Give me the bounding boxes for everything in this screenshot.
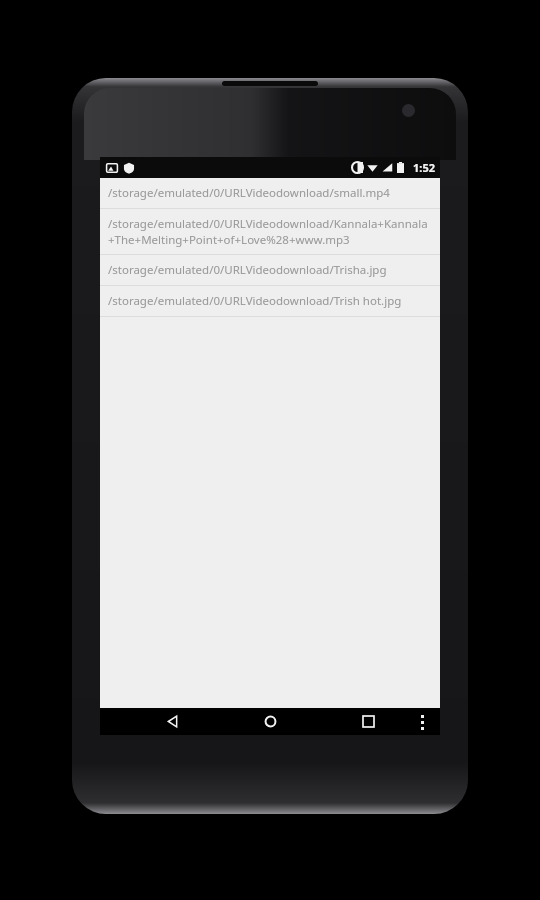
staticText: /storage/emulated/0/URLVideodownload/Tri…: [108, 262, 387, 278]
staticText: /storage/emulated/0/URLVideodownload/Kan…: [108, 216, 432, 247]
button[interactable]: Home: [256, 708, 284, 735]
button[interactable]: Back: [158, 708, 186, 735]
button[interactable]: Recent apps: [354, 708, 382, 735]
button[interactable]: /storage/emulated/0/URLVideodownload/Tri…: [100, 255, 440, 285]
button[interactable]: More options: [410, 710, 434, 734]
staticText: /storage/emulated/0/URLVideodownload/sma…: [108, 185, 390, 201]
staticText: /storage/emulated/0/URLVideodownload/Tri…: [108, 293, 402, 309]
button[interactable]: /storage/emulated/0/URLVideodownload/Tri…: [100, 286, 440, 316]
button[interactable]: /storage/emulated/0/URLVideodownload/Kan…: [100, 209, 440, 254]
staticText: 1:52: [413, 160, 435, 175]
button[interactable]: /storage/emulated/0/URLVideodownload/sma…: [100, 178, 440, 208]
